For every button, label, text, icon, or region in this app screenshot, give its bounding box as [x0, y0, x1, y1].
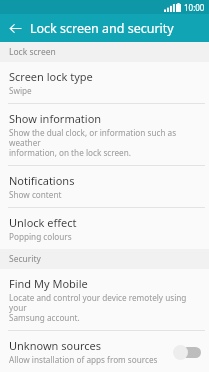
button[interactable]: Screen lock type: [0, 62, 209, 103]
staticText: Allow installation of apps from sources …: [9, 354, 173, 365]
staticText: Lock screen: [9, 46, 56, 58]
staticText: Unknown sources: [9, 338, 102, 353]
staticText: Security: [9, 253, 41, 265]
staticText: Notifications: [9, 173, 75, 188]
button[interactable]: Find My Mobile: [0, 269, 209, 330]
staticText: Find My Mobile: [9, 276, 88, 291]
button[interactable]: Unknown sources: [0, 331, 209, 372]
button[interactable]: Show information: [0, 104, 209, 165]
staticText: Screen lock type: [9, 69, 93, 84]
staticText: Unlock effect: [9, 215, 77, 230]
button[interactable]: Unlock effect: [0, 208, 209, 249]
staticText: Popping colours: [9, 231, 72, 242]
staticText: Show information: [9, 111, 102, 126]
staticText: Swipe: [9, 85, 32, 96]
staticText: Show content: [9, 189, 62, 200]
staticText: Lock screen and security: [30, 20, 174, 37]
staticText: Locate and control your device remotely …: [9, 292, 203, 323]
button[interactable]: Back: [0, 14, 30, 42]
button[interactable]: Toggle unknown sources: [173, 343, 203, 361]
staticText: 10:00: [184, 2, 205, 13]
staticText: Show the dual clock, or information such…: [9, 127, 203, 158]
button[interactable]: Notifications: [0, 166, 209, 207]
